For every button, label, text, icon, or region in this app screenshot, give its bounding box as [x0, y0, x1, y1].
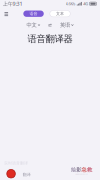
staticText: 影	[76, 166, 81, 173]
staticText: www.downxia.com	[75, 173, 87, 175]
staticText: 4G	[83, 1, 88, 6]
staticText: 实时语音翻译	[4, 161, 28, 166]
staticText: 4.6K/s	[66, 1, 76, 6]
staticText: 翻译	[23, 172, 31, 177]
staticText: 语音翻译器	[27, 33, 72, 45]
staticText: 救	[87, 166, 92, 173]
staticText: 急	[82, 166, 87, 173]
button[interactable]: 文本	[50, 10, 70, 17]
button[interactable]: Menu	[1, 9, 11, 19]
staticText: 上午9:31	[2, 0, 22, 7]
staticText: 语音	[30, 11, 38, 16]
button[interactable]: Swap languages	[48, 24, 51, 26]
button[interactable]: 语音	[23, 10, 44, 17]
button[interactable]: 中文	[27, 22, 40, 28]
staticText: 文本	[56, 11, 64, 16]
button[interactable]: 英语	[60, 22, 73, 28]
staticText: 英语	[60, 22, 70, 28]
staticText: 中文	[27, 22, 37, 28]
button[interactable]: Record	[7, 169, 15, 178]
staticText: 绘	[71, 166, 76, 173]
